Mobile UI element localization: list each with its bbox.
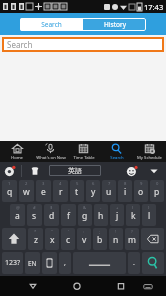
staticText: ?	[131, 229, 133, 235]
button[interactable]: Backspace	[141, 228, 164, 250]
button[interactable]: Shift	[2, 228, 26, 250]
staticText: 3	[42, 181, 45, 187]
staticText: f	[67, 210, 70, 222]
button[interactable]: Home	[0, 141, 34, 162]
button[interactable]: -	[94, 204, 108, 226]
staticText: -	[100, 205, 102, 211]
staticText: What's on Now	[36, 155, 66, 161]
staticText: ,	[64, 258, 66, 268]
button[interactable]: Clipboard	[4, 165, 16, 177]
button[interactable]: 9	[134, 180, 148, 202]
staticText: e	[41, 186, 46, 198]
staticText: *	[34, 229, 37, 235]
staticText: b	[97, 234, 103, 246]
button[interactable]: *	[28, 228, 43, 250]
button[interactable]: 3	[36, 180, 51, 202]
staticText: Search	[41, 20, 62, 29]
staticText: k	[131, 210, 136, 222]
staticText: Time Table	[73, 155, 95, 161]
staticText: 123?	[5, 258, 21, 268]
staticText: w	[23, 186, 30, 198]
staticText: &	[83, 205, 87, 211]
button[interactable]: 4	[53, 180, 68, 202]
button[interactable]: )	[142, 204, 156, 226]
staticText: $	[50, 205, 53, 211]
button[interactable]: Space	[73, 252, 126, 274]
button[interactable]: What's on Now	[34, 141, 67, 162]
staticText: l	[148, 210, 151, 222]
button[interactable]: My Schedule	[133, 141, 166, 162]
staticText: s	[32, 210, 37, 222]
staticText: "	[51, 229, 53, 235]
staticText: u	[106, 186, 112, 198]
button[interactable]: 8	[118, 180, 132, 202]
staticText: v	[82, 234, 87, 246]
staticText: 4	[59, 181, 62, 187]
staticText: +	[116, 205, 119, 211]
staticText: !	[115, 229, 117, 235]
button[interactable]: Recents	[114, 279, 128, 293]
staticText: 英語	[68, 166, 82, 175]
staticText: m	[128, 234, 136, 246]
staticText: p	[154, 186, 160, 198]
button[interactable]: .	[128, 252, 140, 274]
button[interactable]: +	[110, 204, 124, 226]
staticText: x	[50, 234, 55, 246]
button[interactable]: &	[78, 204, 92, 226]
staticText: c	[66, 234, 71, 246]
button[interactable]: Emoji	[126, 165, 138, 177]
button[interactable]: Search	[20, 18, 83, 31]
button[interactable]: #	[27, 204, 42, 226]
button[interactable]: Home	[70, 279, 84, 293]
staticText: 1	[8, 181, 11, 187]
staticText: z	[34, 234, 38, 246]
button[interactable]: Theme	[29, 165, 41, 177]
button[interactable]: "	[45, 228, 59, 250]
staticText: t	[75, 186, 79, 198]
staticText: 2	[25, 181, 28, 187]
button[interactable]: Back	[26, 279, 40, 293]
staticText: n	[113, 234, 119, 246]
staticText: j	[116, 210, 119, 222]
staticText: o	[138, 186, 144, 198]
button[interactable]: Switch keyboard	[141, 279, 155, 293]
button[interactable]: 英語	[49, 165, 101, 176]
button[interactable]: Search	[100, 141, 133, 162]
button[interactable]: Hide keyboard	[148, 165, 160, 177]
button[interactable]: ;	[93, 228, 107, 250]
button[interactable]: ,	[59, 252, 71, 274]
staticText: Home	[11, 155, 23, 161]
button[interactable]: Input method	[42, 252, 57, 274]
button[interactable]: 123?	[2, 252, 23, 274]
button[interactable]: Search	[2, 37, 164, 52]
staticText: d	[49, 210, 55, 222]
staticText: 5	[76, 181, 79, 187]
button[interactable]: @	[10, 204, 25, 226]
staticText: :	[83, 229, 85, 235]
staticText: h	[98, 210, 104, 222]
button[interactable]: Time Table	[67, 141, 100, 162]
button[interactable]: 7	[102, 180, 116, 202]
button[interactable]: (	[126, 204, 140, 226]
button[interactable]: :	[77, 228, 91, 250]
staticText: 7	[108, 181, 111, 187]
button[interactable]: 5	[70, 180, 84, 202]
button[interactable]: '	[61, 228, 75, 250]
button[interactable]: 1	[2, 180, 17, 202]
staticText: )	[148, 205, 150, 211]
staticText: a	[15, 210, 20, 222]
staticText: @	[16, 205, 20, 211]
button[interactable]: 2	[19, 180, 34, 202]
button[interactable]: 0	[150, 180, 164, 202]
staticText: 6	[92, 181, 95, 187]
button[interactable]: _	[61, 204, 76, 226]
button[interactable]: !	[109, 228, 123, 250]
button[interactable]: 6	[86, 180, 100, 202]
button[interactable]: $	[44, 204, 59, 226]
staticText: My Schedule	[137, 155, 162, 161]
button[interactable]: History	[83, 18, 146, 31]
button[interactable]: Search	[142, 252, 164, 274]
button[interactable]: ?	[125, 228, 139, 250]
staticText: ;	[99, 229, 101, 235]
button[interactable]: EN	[25, 252, 40, 274]
